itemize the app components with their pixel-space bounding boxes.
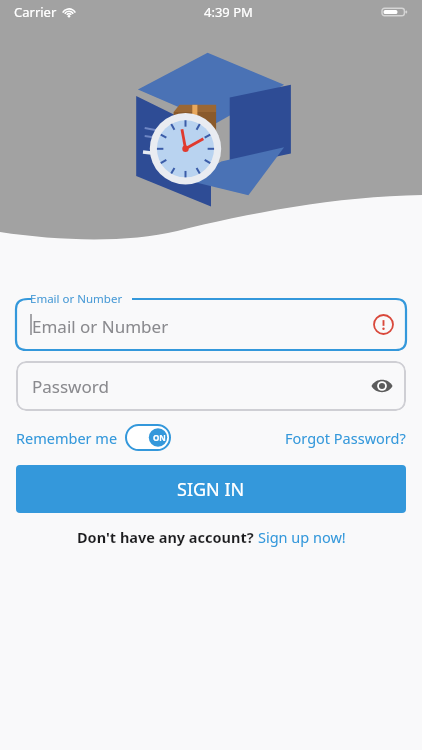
button[interactable]: Sign up now! (258, 527, 346, 547)
staticText: Email or Number (30, 291, 123, 307)
other: Show password (370, 377, 394, 395)
button[interactable]: SIGN IN (16, 465, 406, 513)
other: Remember me toggle, on (126, 425, 170, 450)
staticText: Carrier (14, 3, 57, 21)
button[interactable]: Forgot Password? (285, 428, 406, 448)
staticText: Don't have any account? (77, 527, 254, 547)
button[interactable]: Remember me (16, 425, 170, 450)
staticText: Password (32, 375, 109, 398)
staticText: SIGN IN (177, 477, 245, 502)
staticText: 4:39 PM (204, 3, 253, 21)
staticText: Email or Number (32, 315, 169, 338)
staticText: ON (153, 432, 166, 443)
staticText: Forgot Password? (285, 428, 406, 448)
staticText: Sign up now! (258, 527, 346, 547)
other: Error (373, 314, 394, 335)
button[interactable]: Password (16, 361, 406, 411)
button[interactable]: Email or Number (16, 290, 406, 350)
staticText: Remember me (16, 428, 118, 448)
